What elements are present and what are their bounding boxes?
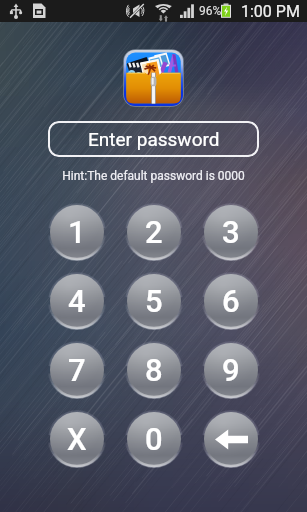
button[interactable]: Clear bbox=[48, 410, 106, 468]
button[interactable]: 1 bbox=[48, 203, 106, 261]
button[interactable]: 3 bbox=[202, 203, 260, 261]
staticText: 4 bbox=[68, 283, 86, 319]
staticText: X bbox=[67, 421, 87, 457]
staticText: 96% bbox=[199, 4, 222, 18]
button[interactable]: 0 bbox=[125, 410, 183, 468]
button[interactable]: 9 bbox=[202, 341, 260, 399]
staticText: 7 bbox=[68, 352, 86, 388]
button[interactable]: 2 bbox=[125, 203, 183, 261]
staticText: 1 bbox=[68, 214, 86, 250]
staticText: 1:00 PM bbox=[241, 2, 300, 21]
button[interactable]: 7 bbox=[48, 341, 106, 399]
staticText: Enter password bbox=[88, 128, 220, 150]
button[interactable]: Backspace bbox=[202, 410, 260, 468]
button[interactable]: 8 bbox=[125, 341, 183, 399]
staticText: 0 bbox=[145, 421, 163, 457]
button[interactable]: App icon bbox=[124, 50, 183, 106]
button[interactable]: 6 bbox=[202, 272, 260, 330]
staticText: 8 bbox=[145, 352, 163, 388]
staticText: 9 bbox=[222, 352, 240, 388]
staticText: Hint:The default password is 0000 bbox=[0, 169, 307, 183]
staticText: 2 bbox=[145, 214, 163, 250]
button[interactable]: 5 bbox=[125, 272, 183, 330]
staticText: 5 bbox=[145, 283, 163, 319]
button[interactable]: Enter password bbox=[48, 121, 259, 157]
staticText: 6 bbox=[222, 283, 240, 319]
staticText: 3 bbox=[222, 214, 240, 250]
button[interactable]: 4 bbox=[48, 272, 106, 330]
